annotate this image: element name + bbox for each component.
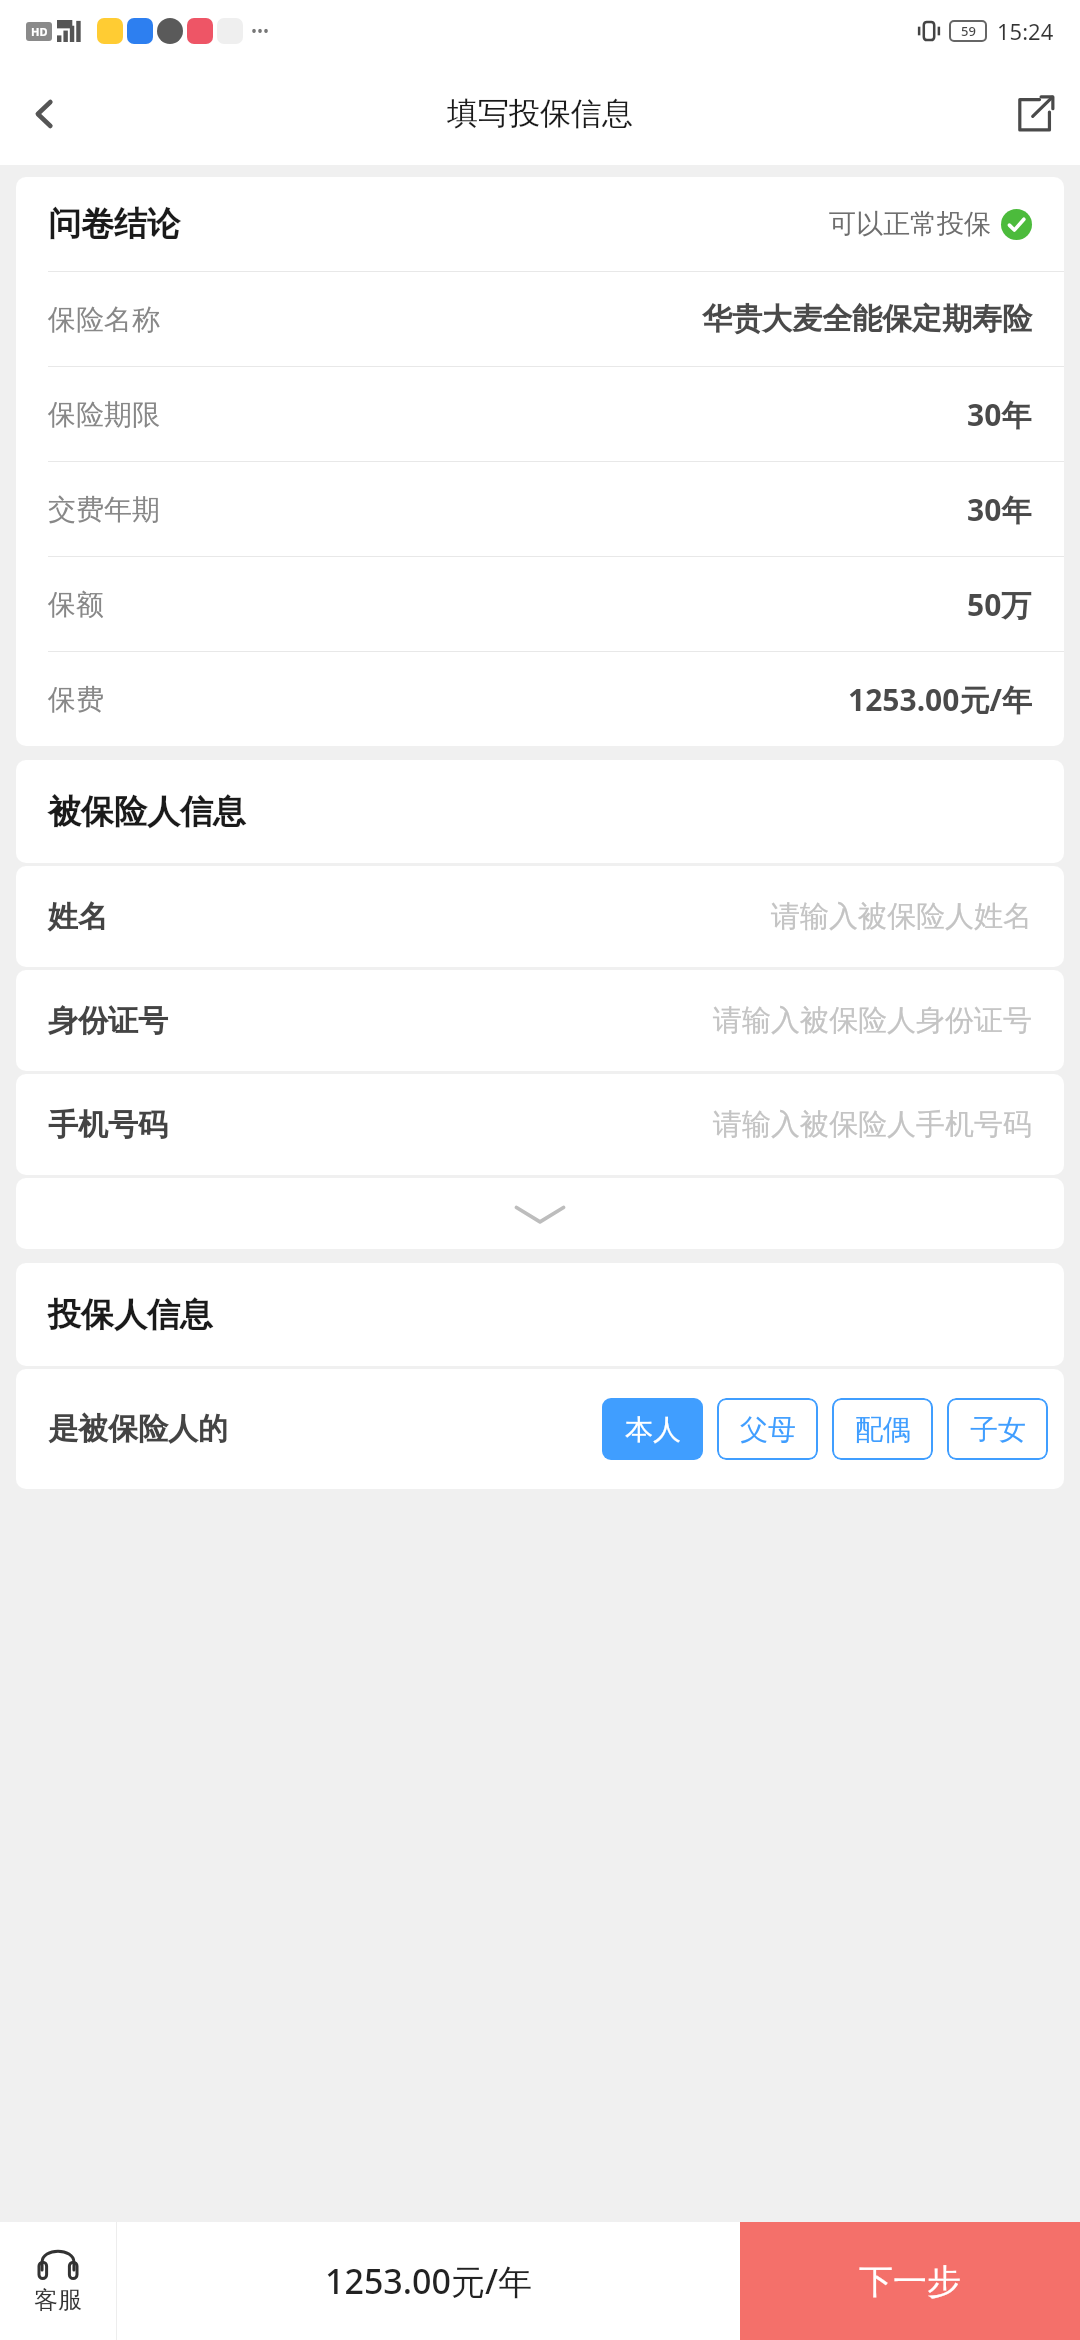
button[interactable]: 投保人信息 [16, 1263, 1064, 1366]
button[interactable]: 保险名称 [16, 272, 1064, 366]
staticText: 59 [961, 22, 976, 40]
staticText: 下一步 [859, 2260, 961, 2303]
button[interactable]: 子女 [947, 1398, 1048, 1460]
button[interactable]: 被保险人信息 [16, 760, 1064, 863]
staticText: 保险名称 [48, 302, 160, 337]
staticText: 30年 [967, 394, 1032, 435]
staticText: 本人 [625, 1412, 681, 1447]
button[interactable]: 保额 [16, 557, 1064, 651]
staticText: 请输入被保险人身份证号 [713, 1002, 1032, 1039]
staticText: 手机号码 [48, 1106, 168, 1144]
staticText: 15:24 [997, 16, 1054, 46]
staticText: 1253.00元/年 [325, 2258, 533, 2304]
button[interactable]: 下一步 [740, 2222, 1080, 2340]
staticText: 被保险人信息 [48, 791, 246, 833]
button[interactable]: 姓名 [16, 866, 1064, 967]
staticText: 保费 [48, 682, 104, 717]
staticText: 华贵大麦全能保定期寿险 [702, 300, 1032, 338]
staticText: 可以正常投保 [829, 207, 991, 241]
staticText: 是被保险人的 [48, 1410, 228, 1448]
staticText: 填写投保信息 [447, 94, 633, 133]
staticText: 保额 [48, 587, 104, 622]
button[interactable]: 客服 [0, 2222, 116, 2340]
button[interactable]: 交费年期 [16, 462, 1064, 556]
button[interactable]: Share [990, 69, 1080, 159]
staticText: 子女 [970, 1412, 1026, 1447]
staticText: 1253.00元/年 [848, 679, 1032, 720]
button[interactable]: Back [0, 69, 90, 159]
button[interactable]: 保险期限 [16, 367, 1064, 461]
staticText: 问卷结论 [48, 203, 180, 245]
staticText: 姓名 [48, 898, 108, 936]
staticText: HD [31, 24, 48, 39]
button[interactable]: 保费 [16, 652, 1064, 746]
staticText: 30年 [967, 489, 1032, 530]
staticText: 请输入被保险人手机号码 [713, 1106, 1032, 1143]
staticText: 身份证号 [48, 1002, 168, 1040]
button[interactable]: 本人 [602, 1398, 703, 1460]
staticText: 保险期限 [48, 397, 160, 432]
button[interactable]: Expand more [16, 1178, 1064, 1249]
button[interactable]: 手机号码 [16, 1074, 1064, 1175]
button[interactable]: 身份证号 [16, 970, 1064, 1071]
staticText: 50万 [967, 584, 1032, 625]
staticText: 配偶 [855, 1412, 911, 1447]
staticText: 父母 [740, 1412, 796, 1447]
button[interactable]: 配偶 [832, 1398, 933, 1460]
button[interactable]: 父母 [717, 1398, 818, 1460]
staticText: ••• [251, 20, 270, 42]
staticText: 投保人信息 [48, 1294, 213, 1336]
staticText: 交费年期 [48, 492, 160, 527]
staticText: 请输入被保险人姓名 [771, 898, 1032, 935]
staticText: 客服 [34, 2285, 82, 2315]
button[interactable]: 问卷结论 [16, 177, 1064, 271]
